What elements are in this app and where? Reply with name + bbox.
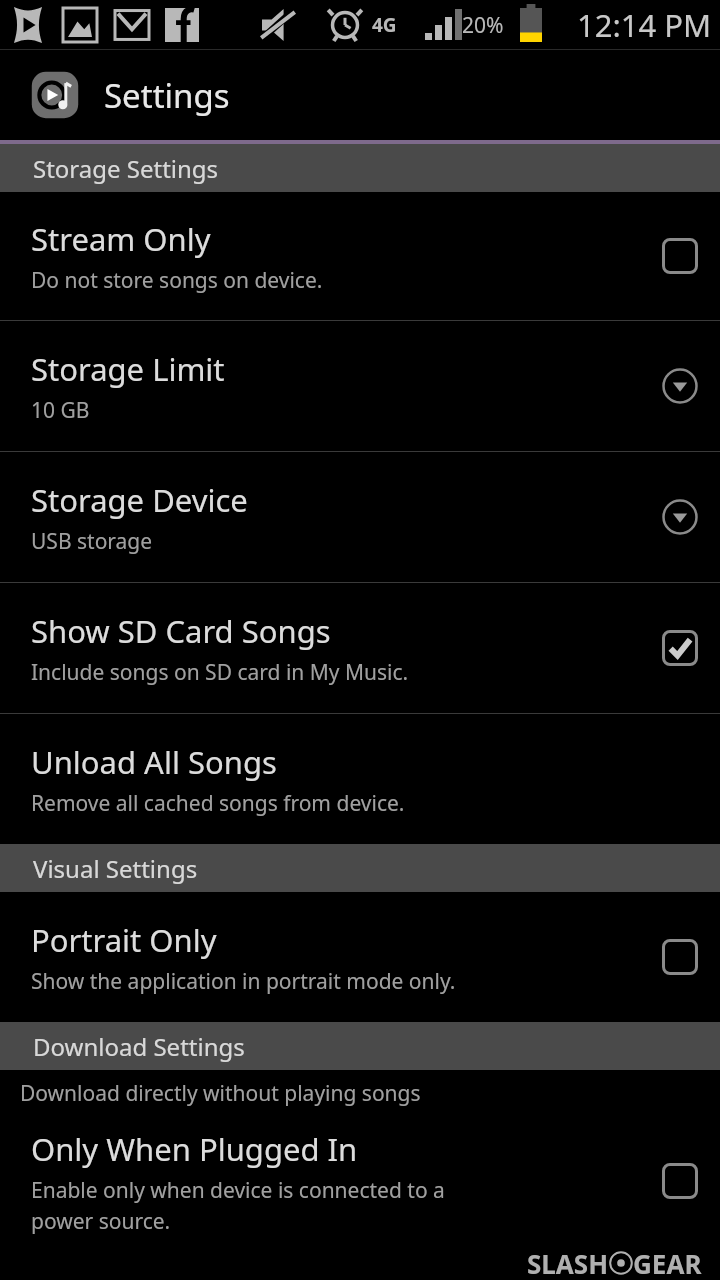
staticText: Download Settings bbox=[33, 1030, 245, 1063]
staticText: Storage Settings bbox=[33, 152, 219, 185]
button[interactable]: Checked bbox=[656, 624, 704, 672]
staticText: 4G bbox=[372, 12, 397, 38]
staticText: Storage Limit bbox=[31, 348, 225, 390]
button[interactable]: Unchecked bbox=[656, 1157, 704, 1205]
staticText: Enable only when device is connected to … bbox=[31, 1176, 445, 1235]
staticText: 20% bbox=[462, 11, 504, 40]
staticText: GEAR bbox=[633, 1246, 702, 1280]
staticText: Show the application in portrait mode on… bbox=[31, 967, 456, 996]
button[interactable]: Stream Only bbox=[0, 192, 720, 320]
button[interactable]: Show SD Card Songs bbox=[0, 583, 720, 713]
staticText: Portrait Only bbox=[31, 919, 217, 961]
staticText: Download directly without playing songs bbox=[20, 1079, 421, 1108]
button[interactable]: Storage Limit bbox=[0, 321, 720, 451]
button[interactable]: Portrait Only bbox=[0, 892, 720, 1022]
button[interactable]: Unchecked bbox=[656, 933, 704, 981]
staticText: USB storage bbox=[31, 527, 153, 556]
staticText: 12:14 PM bbox=[577, 4, 712, 46]
button[interactable]: Only When Plugged In bbox=[0, 1116, 720, 1246]
staticText: Include songs on SD card in My Music. bbox=[31, 658, 409, 687]
staticText: Storage Device bbox=[31, 479, 248, 521]
staticText: 10 GB bbox=[31, 396, 90, 425]
staticText: Show SD Card Songs bbox=[31, 610, 331, 652]
button[interactable]: Unload All Songs bbox=[0, 714, 720, 844]
staticText: SLASH bbox=[527, 1246, 609, 1280]
staticText: Remove all cached songs from device. bbox=[31, 789, 405, 818]
staticText: Settings bbox=[104, 73, 230, 118]
staticText: Unload All Songs bbox=[31, 741, 277, 783]
button[interactable]: Unchecked bbox=[656, 232, 704, 280]
button[interactable]: Open list bbox=[656, 362, 704, 410]
button[interactable]: Storage Device bbox=[0, 452, 720, 582]
button[interactable]: Open list bbox=[656, 493, 704, 541]
staticText: Only When Plugged In bbox=[31, 1128, 358, 1170]
staticText: Visual Settings bbox=[33, 852, 198, 885]
staticText: Stream Only bbox=[31, 218, 211, 260]
staticText: Do not store songs on device. bbox=[31, 266, 323, 295]
